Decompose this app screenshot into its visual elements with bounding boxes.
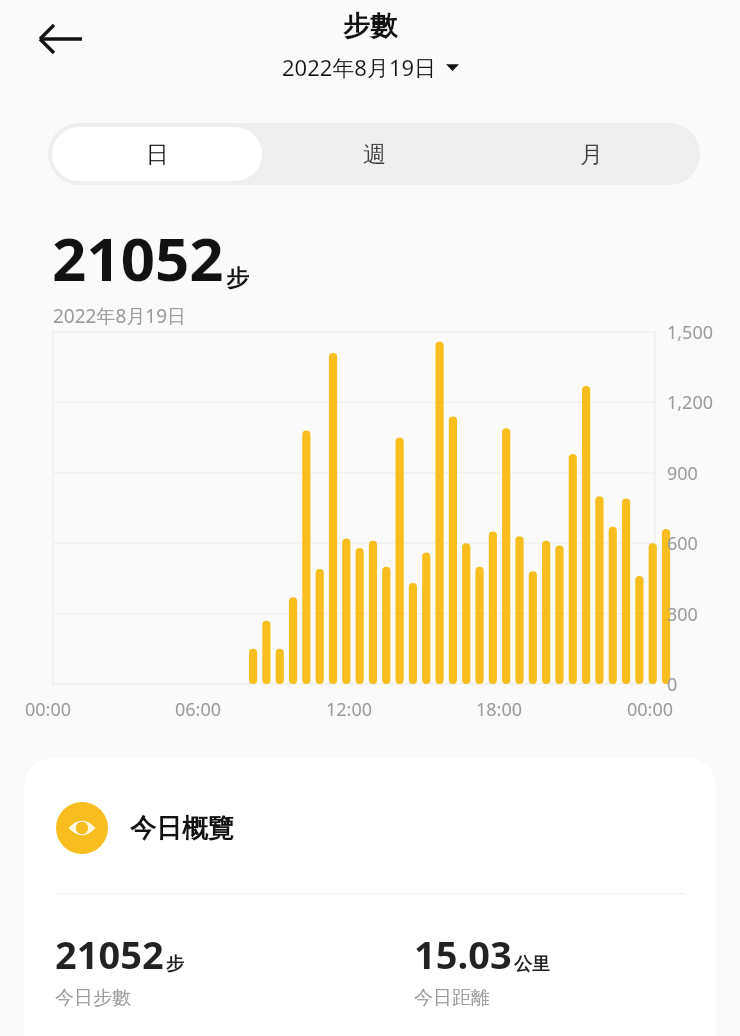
staticText: 2022年8月19日	[282, 52, 437, 82]
staticText: 00:00	[627, 697, 674, 722]
staticText: 步	[166, 953, 184, 976]
other: Overview	[56, 802, 108, 854]
staticText: 900	[667, 461, 698, 486]
staticText: 今日概覽	[130, 812, 234, 845]
button[interactable]: 週	[270, 127, 479, 181]
button[interactable]: 2022年8月19日	[276, 52, 465, 82]
staticText: 12:00	[326, 697, 373, 722]
staticText: 2022年8月19日	[53, 303, 187, 329]
staticText: 600	[667, 531, 698, 556]
staticText: 21052	[55, 928, 164, 980]
button[interactable]: Back	[34, 12, 88, 66]
staticText: 00:00	[25, 697, 72, 722]
staticText: 300	[667, 602, 698, 627]
staticText: 週	[363, 140, 386, 169]
staticText: 步	[226, 264, 249, 293]
staticText: 公里	[514, 953, 550, 976]
staticText: 今日距離	[414, 986, 490, 1010]
button[interactable]: 日	[52, 127, 262, 181]
staticText: 15.03	[414, 928, 512, 980]
staticText: 21052	[52, 217, 224, 299]
button[interactable]: 月	[487, 127, 696, 181]
staticText: 1,500	[667, 320, 714, 345]
staticText: 月	[580, 140, 603, 169]
staticText: 18:00	[476, 697, 523, 722]
staticText: 06:00	[175, 697, 222, 722]
staticText: 1,200	[667, 390, 714, 415]
staticText: 步數	[343, 9, 397, 43]
staticText: 今日步數	[55, 986, 131, 1010]
button[interactable]: Overview	[24, 758, 716, 1036]
staticText: 0	[667, 672, 678, 697]
staticText: 日	[146, 140, 169, 169]
